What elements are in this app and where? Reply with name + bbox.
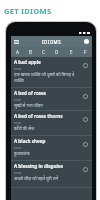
button[interactable]: D [50, 47, 64, 57]
staticText: B [29, 49, 32, 55]
staticText: A blessing in disguise [14, 163, 63, 169]
staticText: A black sheep [14, 138, 46, 144]
button[interactable]: A [11, 47, 24, 57]
button[interactable]: Favorite [80, 57, 91, 73]
staticText: कुलकलंक [14, 151, 30, 157]
staticText: A bad apple [14, 59, 41, 65]
staticText: E [70, 49, 73, 55]
button[interactable]: B [24, 47, 37, 57]
staticText: काँटों की सेज [14, 126, 35, 132]
button[interactable]: Favorite [80, 111, 91, 127]
button[interactable]: A bed of roses [11, 88, 92, 110]
staticText: F [84, 49, 87, 55]
staticText: D [55, 49, 59, 55]
button[interactable]: C [37, 47, 50, 57]
button[interactable]: A black sheep [11, 136, 92, 160]
staticText: एक खराब व्यक्ति जो दूसरों को बिगाड़ दे व… [14, 72, 80, 84]
staticText: IDIOMS [22, 39, 81, 45]
button[interactable]: Search [81, 36, 92, 47]
button[interactable]: Favorite [80, 88, 91, 104]
staticText: C [42, 49, 45, 55]
button[interactable]: E [64, 47, 78, 57]
staticText: noun [14, 121, 22, 125]
staticText: noun [14, 171, 22, 175]
staticText: noun [14, 67, 22, 71]
staticText: noun [14, 98, 22, 102]
staticText: A bed of roses thorns [14, 113, 63, 119]
staticText: A [16, 49, 19, 55]
staticText: A bed of roses [14, 90, 47, 96]
button[interactable]: Favorite [80, 136, 91, 152]
button[interactable]: A blessing in disguise [11, 161, 92, 187]
button[interactable]: Menu [11, 36, 22, 47]
staticText: अच्छी चीज़ जो पहले बुरी लगे [14, 176, 59, 182]
staticText: GET IDIOMS [4, 6, 52, 16]
staticText: सुखों से भरा जीवन [14, 103, 43, 109]
button[interactable]: A bed of roses thorns [11, 111, 92, 135]
staticText: noun [14, 146, 22, 150]
button[interactable]: F [78, 47, 92, 57]
button[interactable]: Favorite [80, 161, 91, 177]
button[interactable]: A bad apple [11, 57, 92, 87]
